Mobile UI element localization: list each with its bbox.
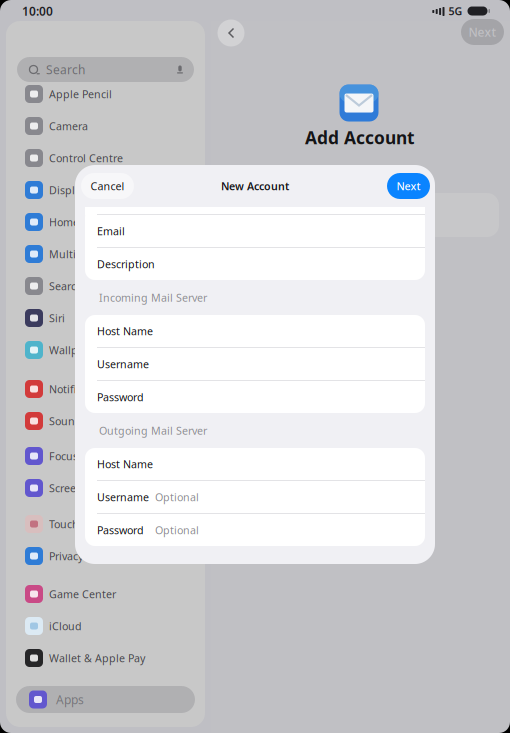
button[interactable]: Notifications (6, 373, 205, 405)
button[interactable]: Camera (6, 110, 205, 142)
staticText: Sounds (49, 414, 87, 428)
staticText: Display & Brightness (49, 183, 155, 197)
button[interactable]: Home Screen & App Library (6, 206, 205, 238)
staticText: Multitasking & Gestures (49, 247, 173, 261)
button[interactable]: Screen Time (6, 472, 205, 504)
button[interactable]: Control Centre (6, 142, 205, 174)
staticText: Username (97, 357, 149, 371)
button[interactable]: Search (6, 270, 205, 302)
button[interactable]: iCloud (6, 610, 205, 642)
button[interactable]: Host Name (85, 315, 425, 347)
button[interactable]: Wallet & Apple Pay (6, 642, 205, 674)
staticText: Wallpaper (49, 343, 101, 357)
button[interactable]: Username (85, 481, 425, 513)
staticText: Add Account (305, 126, 415, 149)
button[interactable]: Password (85, 381, 425, 413)
staticText: Screen Time (49, 481, 111, 495)
button[interactable]: Multitasking & Gestures (6, 238, 205, 270)
button[interactable]: Cancel (81, 173, 134, 199)
staticText: Password (97, 523, 144, 537)
staticText: Description (97, 257, 155, 271)
staticText: Cancel (90, 179, 124, 193)
button[interactable]: Apple Pencil (6, 78, 205, 110)
button[interactable]: Email (85, 215, 425, 247)
button[interactable]: Password (85, 514, 425, 546)
staticText: Incoming Mail Server (99, 290, 207, 305)
staticText: New Account (221, 179, 289, 193)
button[interactable]: Description (85, 248, 425, 280)
staticText: Game Center (49, 587, 116, 601)
staticText: Focus (49, 449, 78, 463)
staticText: Host Name (97, 457, 153, 471)
button[interactable]: Display & Brightness (6, 174, 205, 206)
staticText: Apps (56, 691, 84, 707)
button[interactable]: Sounds (6, 405, 205, 437)
button[interactable]: Next (387, 173, 430, 199)
button[interactable]: Wallpaper (6, 334, 205, 366)
staticText: 5G (448, 4, 462, 18)
staticText: Next (468, 24, 496, 40)
staticText: iCloud (49, 619, 82, 633)
button[interactable]: Next (461, 19, 504, 45)
staticText: Notifications (49, 382, 112, 396)
staticText: Next (396, 179, 420, 193)
staticText: Touch ID & Passcode (49, 517, 154, 531)
staticText: Siri (49, 311, 65, 325)
staticText: 10:00 (22, 3, 53, 19)
staticText: Search (46, 61, 85, 77)
button[interactable]: Siri (6, 302, 205, 334)
staticText: Apple Pencil (49, 87, 112, 101)
staticText: Search (49, 279, 83, 293)
button[interactable]: Apps (16, 686, 195, 713)
staticText: Optional (155, 523, 199, 537)
staticText: Privacy & Security (49, 549, 137, 563)
staticText: Host Name (97, 324, 153, 338)
button[interactable]: Host Name (85, 448, 425, 480)
staticText: Email (97, 224, 125, 238)
button[interactable]: Touch ID & Passcode (6, 508, 205, 540)
staticText: Camera (49, 119, 88, 133)
button[interactable]: Focus (6, 440, 205, 472)
button[interactable]: Game Center (6, 578, 205, 610)
staticText: Username (97, 490, 149, 504)
staticText: Outgoing Mail Server (99, 423, 207, 438)
button[interactable]: Privacy & Security (6, 540, 205, 572)
staticText: Optional (155, 490, 199, 504)
button[interactable]: Back (216, 18, 246, 48)
staticText: Wallet & Apple Pay (49, 651, 145, 665)
staticText: Control Centre (49, 151, 123, 165)
staticText: Home Screen & App Library (49, 215, 189, 229)
staticText: Password (97, 390, 144, 404)
button[interactable]: Username (85, 348, 425, 380)
